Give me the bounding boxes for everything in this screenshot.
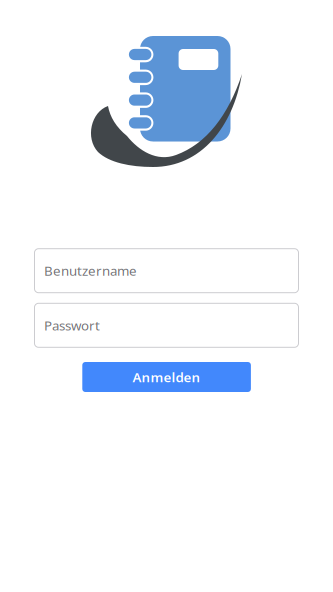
button[interactable]: Benutzername xyxy=(34,249,298,293)
staticText: Anmelden xyxy=(133,368,201,386)
staticText: Benutzername xyxy=(44,262,137,279)
button[interactable]: Passwort xyxy=(34,303,298,347)
button[interactable]: Anmelden xyxy=(82,362,251,392)
staticText: Passwort xyxy=(44,316,100,334)
